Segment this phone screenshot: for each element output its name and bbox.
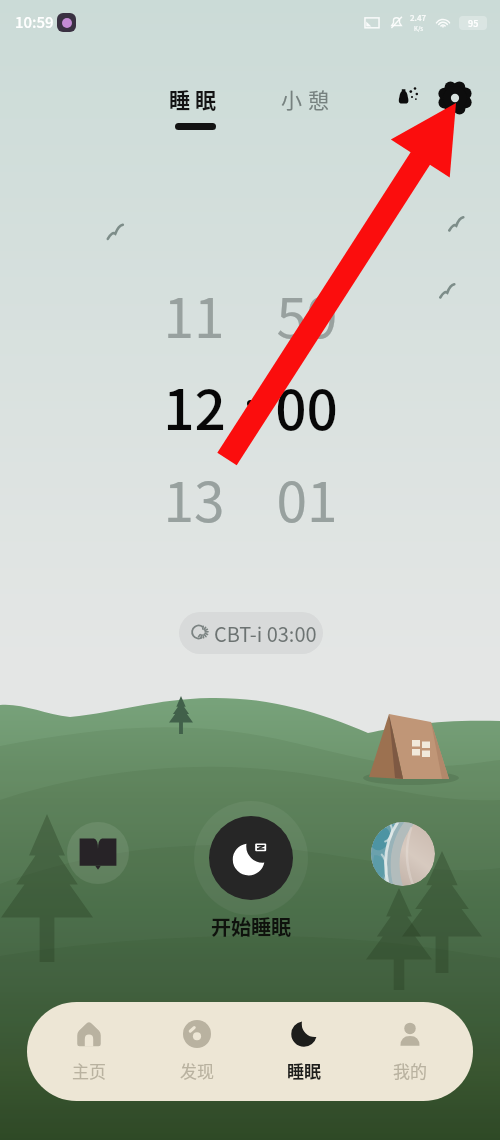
button[interactable]: Aroma diffuser	[386, 77, 426, 117]
staticText: 小憩	[281, 84, 335, 114]
staticText: 11	[163, 274, 225, 350]
staticText: 睡眠	[169, 84, 221, 114]
staticText: 开始睡眠	[211, 912, 291, 941]
staticText: 59	[276, 274, 338, 350]
button[interactable]: 开始睡眠	[176, 816, 326, 941]
staticText: 睡眠	[287, 1058, 321, 1083]
staticText: 2.47	[410, 12, 427, 24]
button[interactable]: 发现	[153, 1002, 241, 1101]
staticText: 95	[468, 17, 479, 30]
staticText: 10:59	[15, 11, 54, 33]
staticText: CBT-i 03:00	[214, 619, 317, 648]
staticText: 主页	[72, 1058, 106, 1083]
button[interactable]: 主页	[45, 1002, 133, 1101]
staticText: 01	[276, 458, 338, 534]
button[interactable]: 我的	[366, 1002, 454, 1101]
staticText: 00	[275, 366, 338, 442]
staticText: 13	[163, 458, 225, 534]
button[interactable]: 小憩	[275, 82, 341, 116]
staticText: 12	[163, 366, 226, 442]
button[interactable]: CBT-i 03:00	[179, 612, 323, 654]
staticText: 我的	[393, 1058, 427, 1083]
button[interactable]: Bedtime stories	[67, 822, 129, 884]
button[interactable]: 睡眠	[260, 1002, 348, 1101]
button[interactable]: 睡眠	[163, 82, 227, 132]
button[interactable]: Soundscapes	[371, 822, 435, 886]
button[interactable]: Settings	[432, 75, 478, 121]
staticText: 发现	[180, 1058, 214, 1083]
staticText: K/s	[414, 24, 424, 33]
